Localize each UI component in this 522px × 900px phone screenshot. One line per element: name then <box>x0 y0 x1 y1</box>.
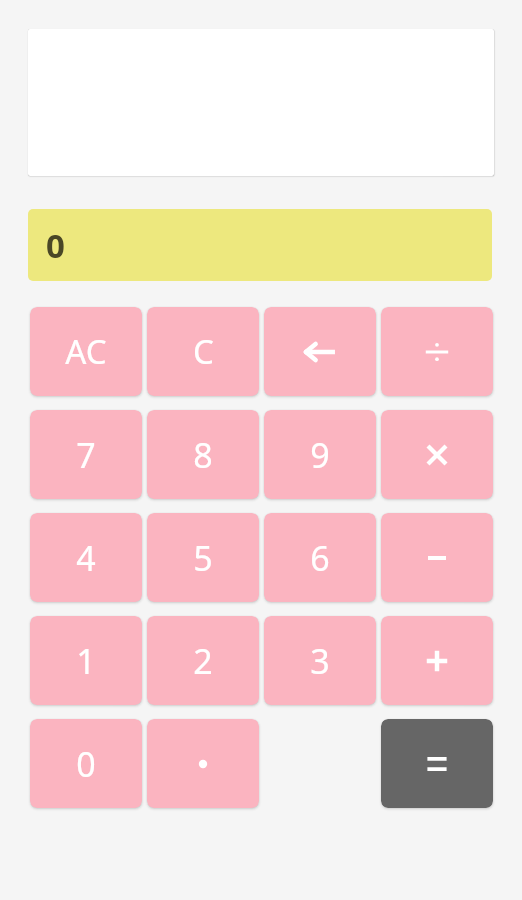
staticText: 5 <box>193 535 213 581</box>
button[interactable]: 6 <box>264 513 376 602</box>
staticText: 2 <box>193 638 213 684</box>
staticText: 1 <box>76 638 96 684</box>
staticText: 6 <box>310 535 330 581</box>
staticText: 0 <box>46 223 65 268</box>
button[interactable]: Divide <box>381 307 493 396</box>
button[interactable]: 4 <box>30 513 142 602</box>
button[interactable]: 2 <box>147 616 259 705</box>
staticText: 4 <box>76 535 96 581</box>
button[interactable]: Equals <box>381 719 493 808</box>
button[interactable]: Decimal point <box>147 719 259 808</box>
staticText: AC <box>65 329 107 374</box>
staticText: 3 <box>310 638 330 684</box>
button[interactable]: Subtract <box>381 513 493 602</box>
button[interactable]: 8 <box>147 410 259 499</box>
staticText: 8 <box>193 432 213 478</box>
button[interactable]: 0 <box>30 719 142 808</box>
button[interactable]: 1 <box>30 616 142 705</box>
button[interactable]: 3 <box>264 616 376 705</box>
button[interactable]: 0 <box>28 209 492 281</box>
staticText: 9 <box>310 432 330 478</box>
button[interactable]: Backspace <box>264 307 376 396</box>
button[interactable]: 9 <box>264 410 376 499</box>
staticText: C <box>193 329 214 374</box>
button[interactable]: Add <box>381 616 493 705</box>
button[interactable]: 5 <box>147 513 259 602</box>
button[interactable]: C <box>147 307 259 396</box>
button[interactable]: 7 <box>30 410 142 499</box>
staticText: 0 <box>76 741 96 787</box>
button[interactable]: Multiply <box>381 410 493 499</box>
staticText: 7 <box>76 432 96 478</box>
button[interactable]: AC <box>30 307 142 396</box>
